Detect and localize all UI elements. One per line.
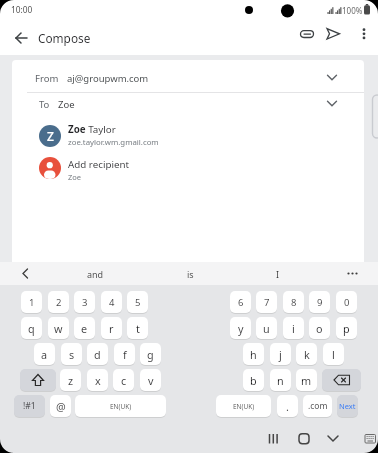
staticText: 6 bbox=[238, 296, 244, 309]
button[interactable]: .com bbox=[303, 395, 332, 417]
button[interactable]: f bbox=[114, 343, 135, 365]
button[interactable] bbox=[8, 22, 40, 54]
staticText: s bbox=[69, 347, 75, 362]
staticText: d bbox=[94, 347, 101, 362]
button[interactable]: i bbox=[283, 317, 304, 339]
button[interactable]: k bbox=[296, 343, 317, 365]
staticText: f bbox=[123, 347, 127, 362]
staticText: x bbox=[95, 373, 101, 388]
button[interactable] bbox=[12, 152, 364, 185]
button[interactable]: t bbox=[127, 317, 148, 339]
button[interactable]: 2 bbox=[48, 291, 69, 313]
staticText: 10:00 bbox=[11, 4, 33, 15]
staticText: EN(UK) bbox=[233, 402, 255, 411]
button[interactable] bbox=[12, 93, 364, 117]
button[interactable]: n bbox=[270, 369, 291, 391]
button[interactable]: j bbox=[270, 343, 291, 365]
button[interactable]: y bbox=[230, 317, 251, 339]
staticText: m bbox=[301, 373, 312, 388]
button[interactable] bbox=[20, 369, 56, 391]
button[interactable]: @ bbox=[50, 395, 71, 417]
button[interactable] bbox=[322, 23, 346, 47]
button[interactable]: Next bbox=[337, 395, 358, 417]
button[interactable]: 5 bbox=[127, 291, 148, 313]
staticText: 2 bbox=[56, 296, 62, 309]
staticText: From bbox=[35, 72, 59, 85]
button[interactable] bbox=[292, 428, 316, 450]
button[interactable]: 0 bbox=[336, 291, 357, 313]
button[interactable]: 7 bbox=[256, 291, 277, 313]
button[interactable]: EN(UK) bbox=[216, 395, 271, 417]
button[interactable] bbox=[12, 62, 364, 92]
staticText: a bbox=[41, 347, 48, 362]
button[interactable]: EN(UK) bbox=[75, 395, 166, 417]
button[interactable]: b bbox=[243, 369, 264, 391]
button[interactable]: x bbox=[87, 369, 108, 391]
staticText: @ bbox=[56, 399, 66, 414]
button[interactable]: l bbox=[323, 343, 344, 365]
staticText: Zoe bbox=[58, 98, 75, 111]
button[interactable]: h bbox=[243, 343, 264, 365]
button[interactable] bbox=[321, 428, 345, 450]
button[interactable] bbox=[262, 428, 286, 450]
staticText: 8 bbox=[291, 296, 297, 309]
button[interactable]: o bbox=[309, 317, 330, 339]
button[interactable]: g bbox=[140, 343, 161, 365]
button[interactable]: 4 bbox=[101, 291, 122, 313]
staticText: .com bbox=[308, 400, 328, 412]
button[interactable]: I bbox=[240, 262, 316, 285]
staticText: To bbox=[39, 98, 50, 111]
button[interactable]: d bbox=[87, 343, 108, 365]
staticText: 100% bbox=[342, 5, 363, 16]
staticText: k bbox=[304, 347, 310, 362]
staticText: Next bbox=[339, 401, 356, 411]
button[interactable]: u bbox=[256, 317, 277, 339]
staticText: I bbox=[276, 268, 280, 280]
staticText: 0 bbox=[344, 296, 350, 309]
button[interactable]: !#1 bbox=[14, 395, 45, 417]
button[interactable] bbox=[12, 119, 364, 152]
button[interactable]: z bbox=[60, 369, 81, 391]
staticText: . bbox=[286, 399, 289, 414]
button[interactable]: 6 bbox=[230, 291, 251, 313]
button[interactable]: 1 bbox=[21, 291, 42, 313]
button[interactable]: w bbox=[48, 317, 69, 339]
button[interactable]: and bbox=[40, 262, 150, 285]
button[interactable] bbox=[358, 428, 378, 450]
staticText: j bbox=[279, 347, 282, 362]
staticText: h bbox=[250, 347, 257, 362]
staticText: g bbox=[147, 347, 154, 362]
staticText: Zoe Taylor bbox=[68, 123, 116, 136]
staticText: 5 bbox=[135, 296, 141, 309]
button[interactable]: is bbox=[150, 262, 230, 285]
staticText: u bbox=[263, 321, 270, 336]
button[interactable]: c bbox=[113, 369, 134, 391]
button[interactable]: v bbox=[140, 369, 161, 391]
button[interactable] bbox=[352, 23, 376, 47]
button[interactable]: 8 bbox=[283, 291, 304, 313]
button[interactable]: q bbox=[21, 317, 42, 339]
staticText: z bbox=[68, 373, 74, 388]
button[interactable] bbox=[296, 23, 320, 47]
button[interactable]: p bbox=[336, 317, 357, 339]
button[interactable]: . bbox=[277, 395, 298, 417]
button[interactable]: s bbox=[61, 343, 82, 365]
staticText: Zoe bbox=[68, 172, 82, 182]
staticText: EN(UK) bbox=[110, 402, 132, 411]
button[interactable] bbox=[322, 369, 361, 391]
button[interactable]: r bbox=[101, 317, 122, 339]
staticText: n bbox=[277, 373, 284, 388]
staticText: !#1 bbox=[23, 400, 36, 412]
staticText: o bbox=[316, 321, 323, 336]
staticText: 7 bbox=[264, 296, 270, 309]
button[interactable]: 3 bbox=[74, 291, 95, 313]
button[interactable]: e bbox=[74, 317, 95, 339]
button[interactable]: a bbox=[34, 343, 55, 365]
staticText: l bbox=[332, 347, 335, 362]
staticText: is bbox=[187, 268, 194, 280]
button[interactable]: m bbox=[296, 369, 317, 391]
staticText: 9 bbox=[317, 296, 323, 309]
staticText: i bbox=[292, 321, 295, 336]
button[interactable]: 9 bbox=[309, 291, 330, 313]
staticText: e bbox=[81, 321, 88, 336]
